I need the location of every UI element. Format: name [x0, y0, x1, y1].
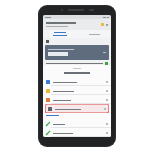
button[interactable]: Open	[43, 86, 111, 95]
button[interactable]: Open	[43, 77, 111, 86]
button[interactable]: Open	[43, 128, 111, 137]
button[interactable]: Open	[43, 119, 111, 128]
button[interactable]: Open	[43, 95, 111, 104]
button[interactable]: Open	[45, 104, 109, 113]
